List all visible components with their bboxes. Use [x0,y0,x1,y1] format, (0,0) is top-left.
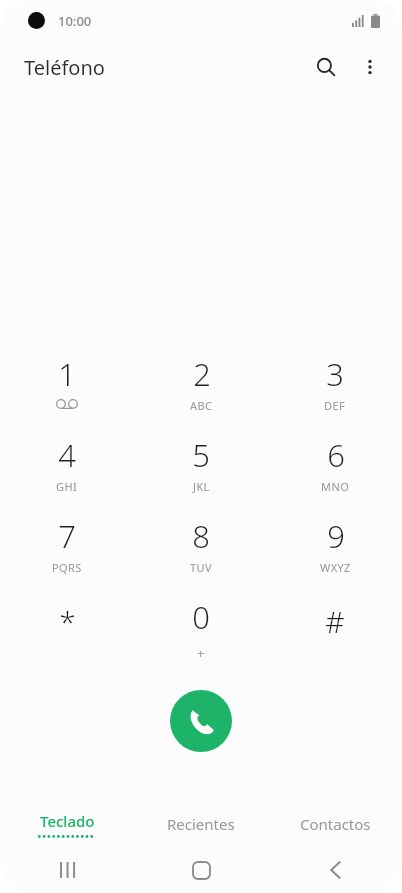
button[interactable]: 7 [0,511,134,592]
staticText: GHI [56,479,78,494]
staticText: 3 [326,353,344,395]
staticText: 6 [327,434,345,476]
button[interactable]: Llamar [170,690,232,752]
staticText: Recientes [167,814,235,834]
staticText: ABC [190,398,213,413]
button[interactable]: Inicio [173,847,229,893]
button[interactable]: 9 [268,511,402,592]
button[interactable]: Teclado [0,801,134,847]
button[interactable]: 5 [134,430,268,511]
staticText: * [59,601,76,642]
staticText: MNO [321,479,350,494]
staticText: 2 [193,353,211,395]
staticText: WXYZ [320,560,351,575]
staticText: PQRS [52,560,82,575]
button[interactable]: Recientes [134,801,268,847]
staticText: JKL [193,479,210,494]
button[interactable]: 4 [0,430,134,511]
staticText: 1 [58,353,76,395]
staticText: 8 [192,515,210,557]
staticText: + [197,644,205,662]
staticText: Contactos [300,814,371,834]
button[interactable]: Recientes [39,847,95,893]
button[interactable]: # [268,592,402,673]
staticText: 0 [192,596,210,638]
button[interactable]: Contactos [268,801,402,847]
button[interactable]: Atrás [307,847,363,893]
staticText: 7 [58,515,76,557]
staticText: 5 [192,434,210,476]
staticText: 4 [58,434,76,476]
button[interactable]: Buscar [304,45,348,89]
staticText: Teléfono [24,54,105,81]
staticText: Teclado [40,811,95,831]
button[interactable]: 3 [268,349,402,430]
button[interactable]: 8 [134,511,268,592]
button[interactable]: 2 [134,349,268,430]
button[interactable]: 0 [134,592,268,673]
staticText: TUV [190,560,212,575]
button[interactable]: 6 [268,430,402,511]
staticText: DEF [324,398,346,413]
staticText: # [325,601,345,642]
button[interactable]: Más opciones [348,45,392,89]
staticText: 10:00 [58,12,92,30]
button[interactable]: 1 [0,349,134,430]
staticText: 9 [327,515,345,557]
button[interactable]: * [0,592,134,673]
